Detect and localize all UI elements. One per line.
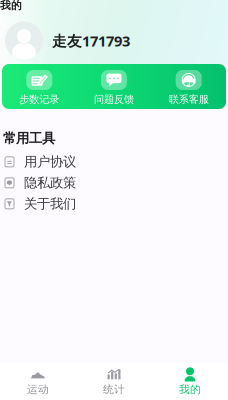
staticText: 我的 [179,383,201,396]
staticText: 用户协议 [24,154,76,170]
staticText: 问题反馈 [94,93,134,106]
button[interactable]: 运动 [0,363,76,400]
staticText: 联系客服 [169,93,209,106]
button[interactable]: 问题反馈 [77,64,151,109]
staticText: 运动 [27,383,49,396]
button[interactable]: 我的 [152,363,228,400]
staticText: 常用工具 [3,130,55,146]
button[interactable]: 步数记录 [2,64,77,109]
button[interactable]: 统计 [76,363,152,400]
staticText: 关于我们 [24,196,76,212]
button[interactable]: 关于我们 [0,193,228,214]
staticText: 走友171793 [52,31,130,50]
staticText: 步数记录 [19,93,59,106]
staticText: 统计 [103,383,125,396]
button[interactable]: 隐私政策 [0,172,228,193]
button[interactable]: 联系客服 [151,64,226,109]
staticText: 隐私政策 [24,175,76,191]
staticText: 我的 [0,0,22,12]
button[interactable]: 用户协议 [0,151,228,172]
